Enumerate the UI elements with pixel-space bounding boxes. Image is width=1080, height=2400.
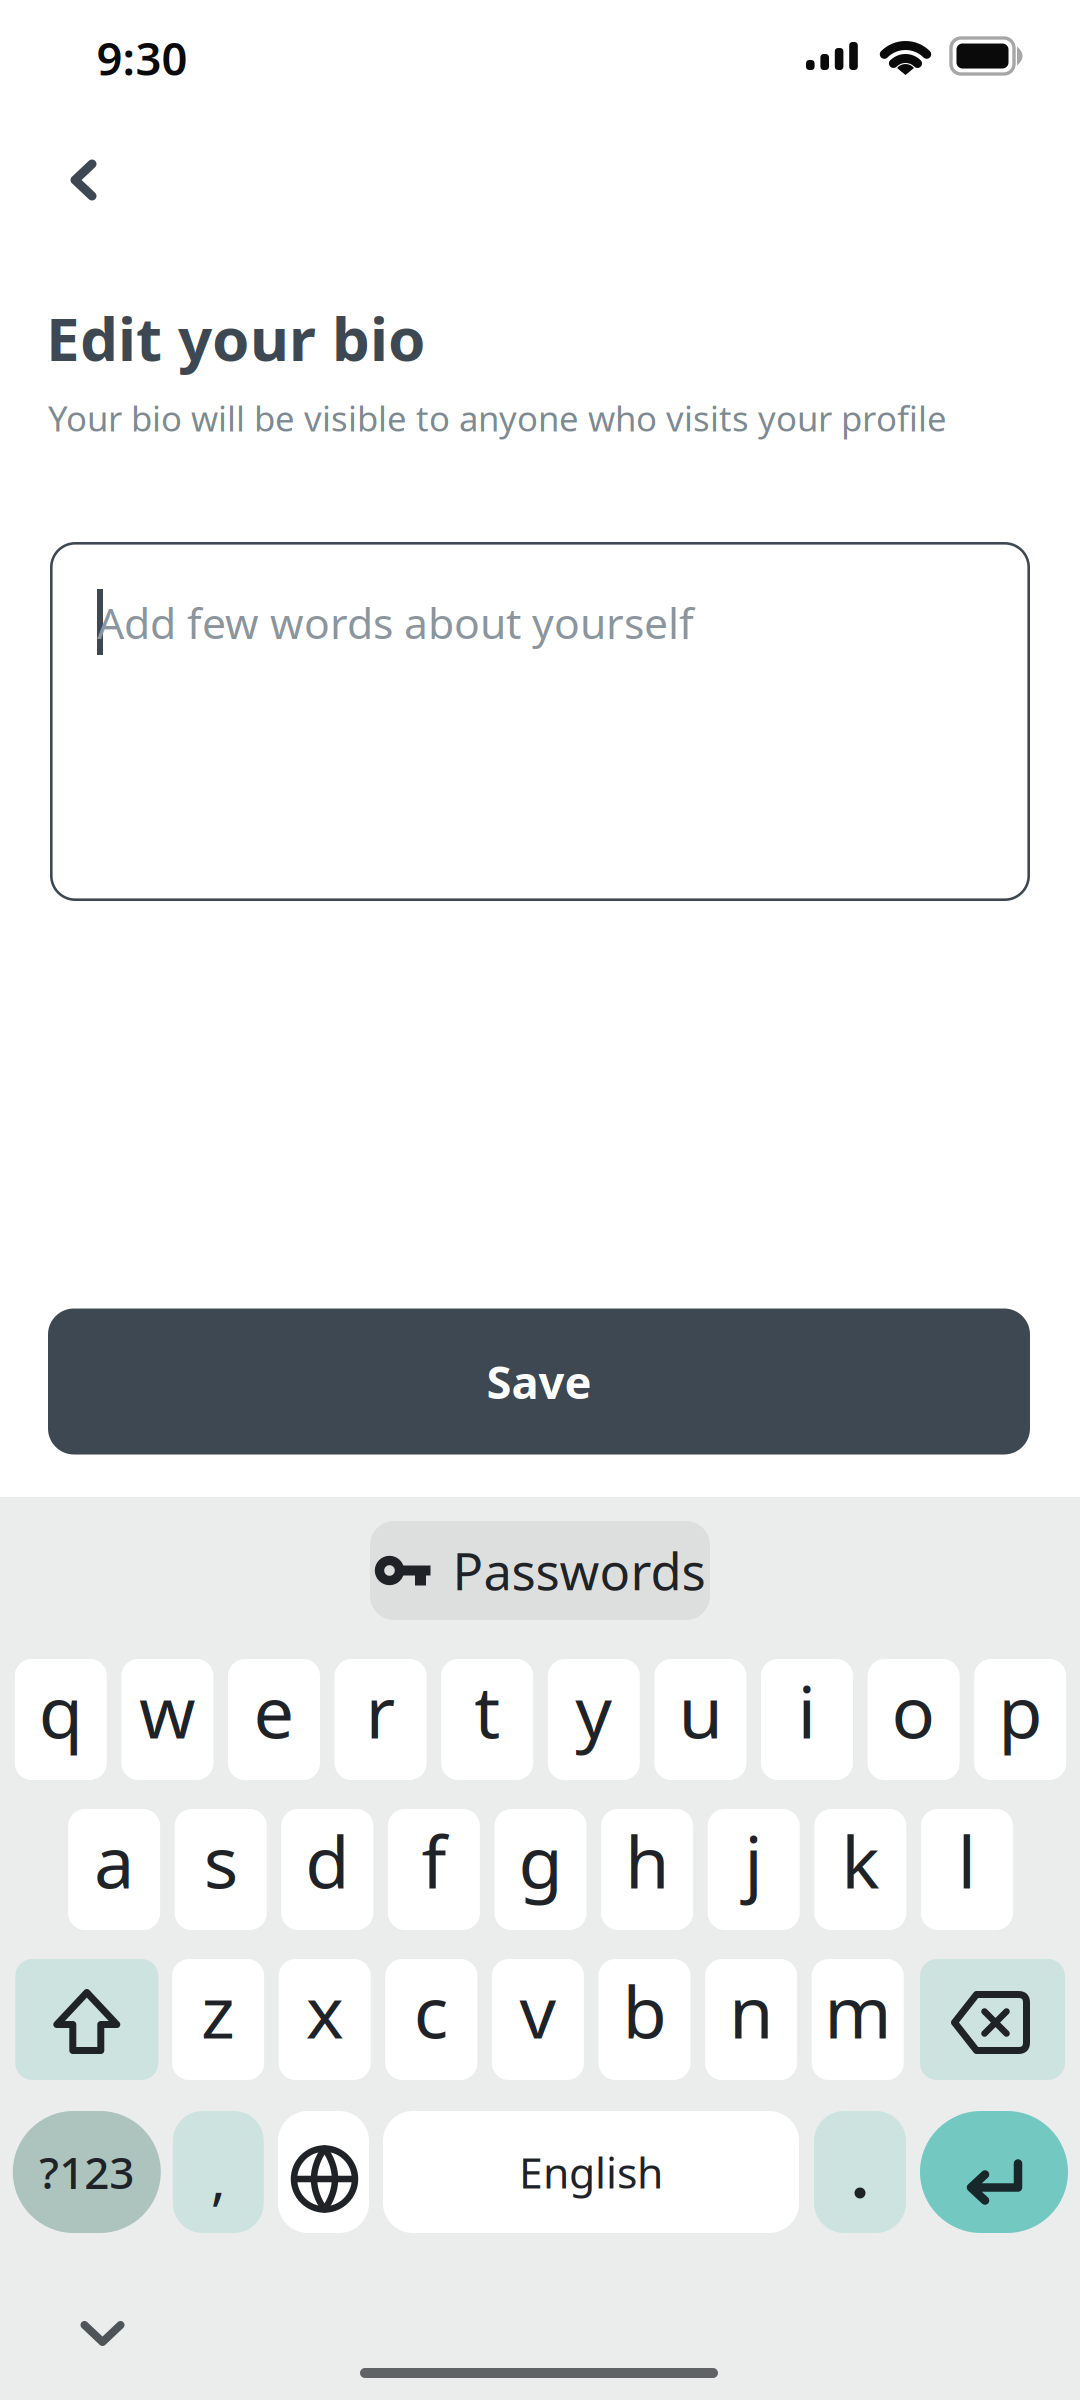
staticText: g: [518, 1813, 562, 1908]
button[interactable]: Save: [48, 1308, 1030, 1454]
button[interactable]: z: [172, 1959, 264, 2080]
button[interactable]: b: [598, 1959, 690, 2080]
button[interactable]: Back: [63, 159, 105, 201]
staticText: m: [824, 1963, 891, 2058]
button[interactable]: j: [708, 1809, 800, 1930]
button[interactable]: v: [492, 1959, 584, 2080]
staticText: Edit your bio: [46, 298, 426, 378]
staticText: English: [519, 2144, 663, 2200]
button[interactable]: g: [494, 1809, 586, 1930]
button[interactable]: x: [279, 1959, 371, 2080]
button[interactable]: Add few words about yourself: [50, 542, 1030, 901]
staticText: r: [366, 1663, 396, 1758]
staticText: x: [306, 1963, 344, 2058]
staticText: t: [474, 1663, 500, 1758]
button[interactable]: w: [121, 1659, 213, 1780]
staticText: a: [94, 1813, 134, 1908]
staticText: i: [797, 1663, 816, 1758]
button[interactable]: n: [705, 1959, 797, 2080]
staticText: Your bio will be visible to anyone who v…: [48, 395, 947, 441]
button[interactable]: y: [548, 1659, 640, 1780]
staticText: v: [519, 1963, 556, 2058]
button[interactable]: u: [654, 1659, 746, 1780]
staticText: Passwords: [452, 1537, 705, 1604]
button[interactable]: s: [175, 1809, 267, 1930]
staticText: Save: [486, 1351, 591, 1412]
staticText: p: [998, 1663, 1042, 1758]
button[interactable]: ,: [173, 2111, 264, 2233]
button[interactable]: Space: [383, 2111, 799, 2233]
button[interactable]: Passwords: [370, 1521, 710, 1620]
staticText: f: [421, 1813, 446, 1908]
button[interactable]: c: [385, 1959, 477, 2080]
button[interactable]: i: [761, 1659, 853, 1780]
button[interactable]: r: [335, 1659, 427, 1780]
staticText: h: [625, 1813, 669, 1908]
button[interactable]: Return: [920, 2111, 1068, 2233]
staticText: Add few words about yourself: [97, 594, 694, 651]
staticText: z: [201, 1963, 235, 2058]
button[interactable]: Backspace: [920, 1959, 1065, 2080]
staticText: c: [414, 1963, 449, 2058]
staticText: q: [39, 1663, 83, 1758]
button[interactable]: m: [812, 1959, 904, 2080]
button[interactable]: a: [68, 1809, 160, 1930]
button[interactable]: h: [601, 1809, 693, 1930]
button[interactable]: k: [814, 1809, 906, 1930]
button[interactable]: d: [281, 1809, 373, 1930]
staticText: y: [575, 1663, 612, 1758]
staticText: b: [622, 1963, 666, 2058]
staticText: w: [139, 1663, 196, 1758]
button[interactable]: e: [228, 1659, 320, 1780]
button[interactable]: Period: [814, 2111, 906, 2233]
staticText: u: [678, 1663, 722, 1758]
button[interactable]: p: [974, 1659, 1066, 1780]
button[interactable]: Switch language: [278, 2111, 369, 2233]
button[interactable]: f: [388, 1809, 480, 1930]
button[interactable]: q: [15, 1659, 107, 1780]
staticText: 9:30: [96, 28, 187, 88]
button[interactable]: l: [921, 1809, 1013, 1930]
staticText: e: [253, 1663, 294, 1758]
button[interactable]: Hide keyboard: [81, 2322, 123, 2346]
button[interactable]: t: [441, 1659, 533, 1780]
staticText: d: [305, 1813, 349, 1908]
staticText: k: [841, 1813, 879, 1908]
staticText: ,: [211, 2141, 226, 2215]
staticText: n: [729, 1963, 773, 2058]
button[interactable]: Shift: [15, 1959, 158, 2080]
staticText: j: [744, 1813, 763, 1908]
button[interactable]: ?123: [13, 2111, 161, 2233]
staticText: s: [204, 1813, 238, 1908]
button[interactable]: o: [868, 1659, 960, 1780]
staticText: l: [957, 1813, 976, 1908]
staticText: ?123: [39, 2143, 134, 2201]
staticText: o: [892, 1663, 936, 1758]
